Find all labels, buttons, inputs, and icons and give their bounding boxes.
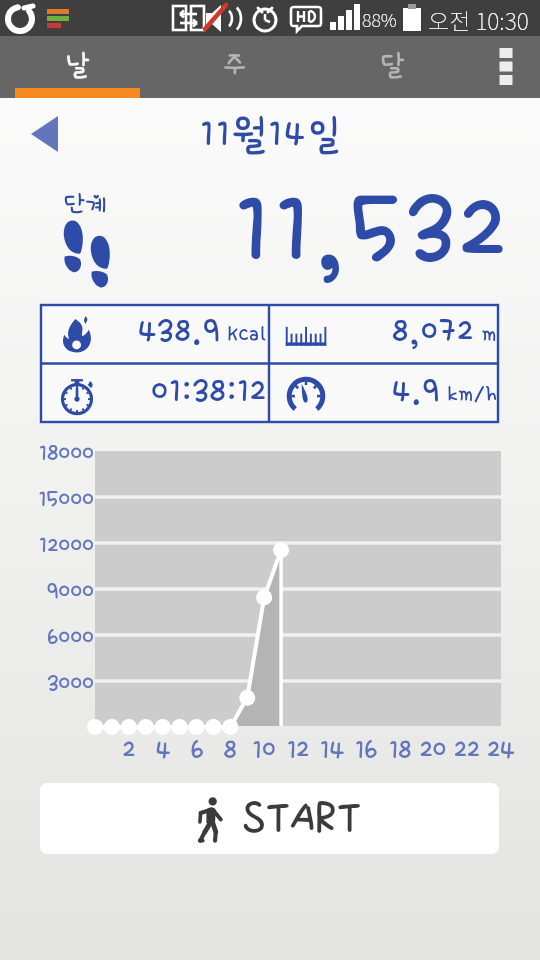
staticText: Kcal (221, 322, 267, 346)
staticText: 16 (350, 735, 382, 765)
staticText: 22 (451, 735, 483, 765)
staticText: 2 (113, 735, 145, 765)
button[interactable]: More options (472, 36, 540, 98)
staticText: 88% (362, 6, 397, 32)
button[interactable]: 438.9 (40, 304, 269, 363)
staticText: 4 (147, 735, 179, 765)
staticText: 8 (214, 735, 246, 765)
button[interactable]: 주 (172, 36, 297, 98)
staticText: 15000 (12, 486, 94, 512)
staticText: 9000 (12, 578, 94, 604)
staticText: 01:38:12 (151, 373, 267, 410)
staticText: 6000 (12, 624, 94, 650)
button[interactable]: 01:38:12 (40, 364, 269, 423)
staticText: 단계 (64, 191, 106, 217)
button[interactable]: START (40, 783, 499, 854)
staticText: 12000 (12, 532, 94, 558)
button[interactable]: 4.9 (269, 364, 499, 423)
button[interactable]: 날 (15, 36, 140, 98)
staticText: 24 (485, 735, 517, 765)
staticText: 8,072 (392, 313, 475, 350)
staticText: 12 (282, 735, 314, 765)
staticText: 18 (384, 735, 416, 765)
staticText: START (242, 793, 362, 843)
staticText: 오전 10:30 (428, 3, 529, 36)
button[interactable]: 달 (330, 36, 455, 98)
staticText: 6 (181, 735, 213, 765)
staticText: 11,532 (234, 175, 512, 285)
staticText: m (475, 322, 497, 346)
staticText: 18000 (12, 440, 94, 466)
staticText: 주 (223, 50, 247, 79)
staticText: 438.9 (138, 313, 221, 350)
staticText: 날 (66, 50, 90, 79)
staticText: 20 (417, 735, 449, 765)
staticText: 3000 (12, 670, 94, 696)
staticText: 14 (316, 735, 348, 765)
staticText: km/h (441, 382, 497, 406)
button[interactable]: 8,072 (269, 304, 499, 363)
staticText: 11월14일 (200, 113, 344, 155)
staticText: 4.9 (392, 373, 441, 410)
button[interactable]: Previous day (16, 108, 72, 160)
staticText: 10 (248, 735, 280, 765)
staticText: 달 (381, 50, 405, 79)
